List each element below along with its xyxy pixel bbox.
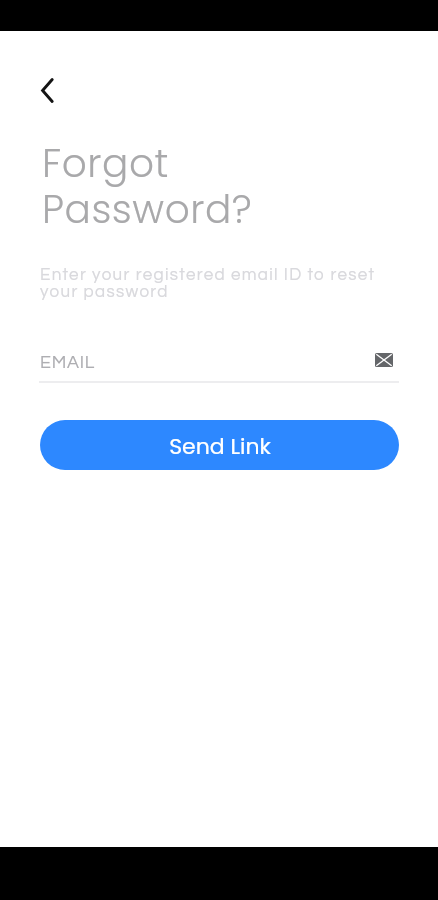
- staticText: Forgot Password?: [42, 136, 253, 237]
- staticText: EMAIL: [40, 353, 96, 372]
- staticText: Send Link: [169, 431, 271, 462]
- button[interactable]: Email: [368, 347, 399, 373]
- button[interactable]: Send Link: [40, 420, 399, 470]
- staticText: your password: [40, 283, 169, 301]
- button[interactable]: Back: [30, 72, 66, 108]
- staticText: Enter your registered email ID to reset: [40, 266, 376, 284]
